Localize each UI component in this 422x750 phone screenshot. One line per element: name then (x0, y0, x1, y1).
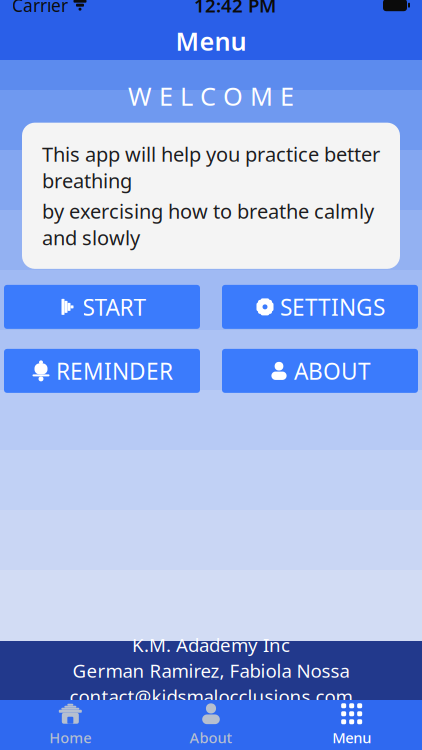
staticText: REMINDER (56, 356, 173, 386)
staticText: START (82, 292, 146, 322)
button[interactable]: SETTINGS (222, 285, 418, 329)
button[interactable]: Home (0, 700, 141, 750)
staticText: This app will help you practice better b… (42, 141, 380, 194)
staticText: Menu (175, 24, 246, 58)
staticText: ABOUT (294, 356, 371, 386)
staticText: contact@kidsmalocclusions.com (69, 684, 352, 709)
staticText: Home (49, 728, 91, 747)
button[interactable]: ABOUT (222, 349, 418, 393)
staticText: W E L C O M E (128, 79, 294, 113)
staticText: German Ramirez, Fabiola Nossa (72, 658, 349, 683)
staticText: Carrier (12, 0, 68, 17)
staticText: K.M. Adademy Inc (132, 632, 290, 657)
button[interactable]: REMINDER (4, 349, 200, 393)
staticText: SETTINGS (280, 292, 385, 322)
staticText: Menu (332, 728, 371, 747)
button[interactable]: Menu (281, 700, 422, 750)
staticText: 12:42 PM (194, 0, 276, 18)
staticText: About (189, 728, 232, 747)
staticText: by exercising how to breathe calmly and … (42, 198, 374, 251)
button[interactable]: START (4, 285, 200, 329)
button[interactable]: About (141, 700, 281, 750)
